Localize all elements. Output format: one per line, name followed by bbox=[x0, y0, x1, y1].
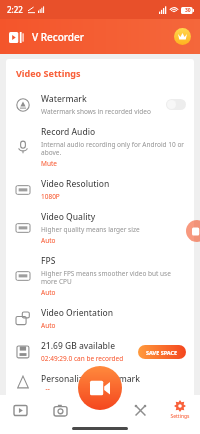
button[interactable]: Video Quality bbox=[6, 206, 194, 250]
staticText: Auto bbox=[41, 288, 56, 297]
button[interactable]: Video Orientation bbox=[6, 302, 194, 335]
staticText: Record Audio bbox=[41, 126, 96, 138]
staticText: Personalized watermark bbox=[41, 373, 140, 385]
button[interactable]: Personalized watermark bbox=[6, 368, 194, 395]
button[interactable]: Settings bbox=[160, 395, 200, 425]
button[interactable]: Watermark bbox=[6, 88, 194, 121]
button[interactable]: SAVE SPACE bbox=[138, 345, 186, 359]
staticText: Video Settings bbox=[16, 67, 81, 79]
button[interactable]: Toggle watermark bbox=[166, 99, 186, 110]
button[interactable]: Videos bbox=[0, 395, 40, 425]
staticText: FPS bbox=[41, 255, 56, 267]
staticText: Auto bbox=[41, 236, 56, 245]
staticText: 1080P bbox=[41, 192, 60, 201]
button[interactable]: Record Audio bbox=[6, 121, 194, 173]
button[interactable]: Floating recorder bbox=[186, 220, 200, 242]
staticText: 02:49:29.0 can be recorded bbox=[41, 354, 124, 363]
staticText: Video Orientation bbox=[41, 307, 114, 319]
button[interactable]: Video Resolution bbox=[6, 173, 194, 206]
staticText: Higher FPS means smoother video but use … bbox=[41, 269, 186, 286]
button[interactable]: 21.69 GB available bbox=[6, 335, 194, 368]
staticText: Watermark shows in recorded video bbox=[41, 107, 151, 116]
button[interactable]: Camera bbox=[40, 395, 80, 425]
staticText: Higher quality means larger size bbox=[41, 225, 140, 234]
button[interactable]: Tools bbox=[120, 395, 160, 425]
staticText: Auto bbox=[41, 321, 56, 330]
staticText: V Recorder bbox=[32, 30, 85, 44]
staticText: 2:22 bbox=[7, 4, 23, 15]
staticText: 21.69 GB available bbox=[41, 340, 116, 352]
staticText: Video Resolution bbox=[41, 178, 110, 190]
button[interactable]: FPS bbox=[6, 250, 194, 302]
staticText: Internal audio recording only for Androi… bbox=[41, 140, 186, 157]
button[interactable]: Premium bbox=[174, 28, 191, 45]
button[interactable]: Record bbox=[78, 366, 122, 410]
staticText: Watermark bbox=[41, 93, 87, 105]
staticText: Mute bbox=[41, 159, 57, 168]
staticText: SAVE SPACE bbox=[146, 349, 178, 356]
staticText: Video Quality bbox=[41, 211, 96, 223]
staticText: off bbox=[41, 387, 50, 390]
staticText: Settings bbox=[170, 413, 190, 420]
staticText: 30 bbox=[185, 7, 191, 14]
